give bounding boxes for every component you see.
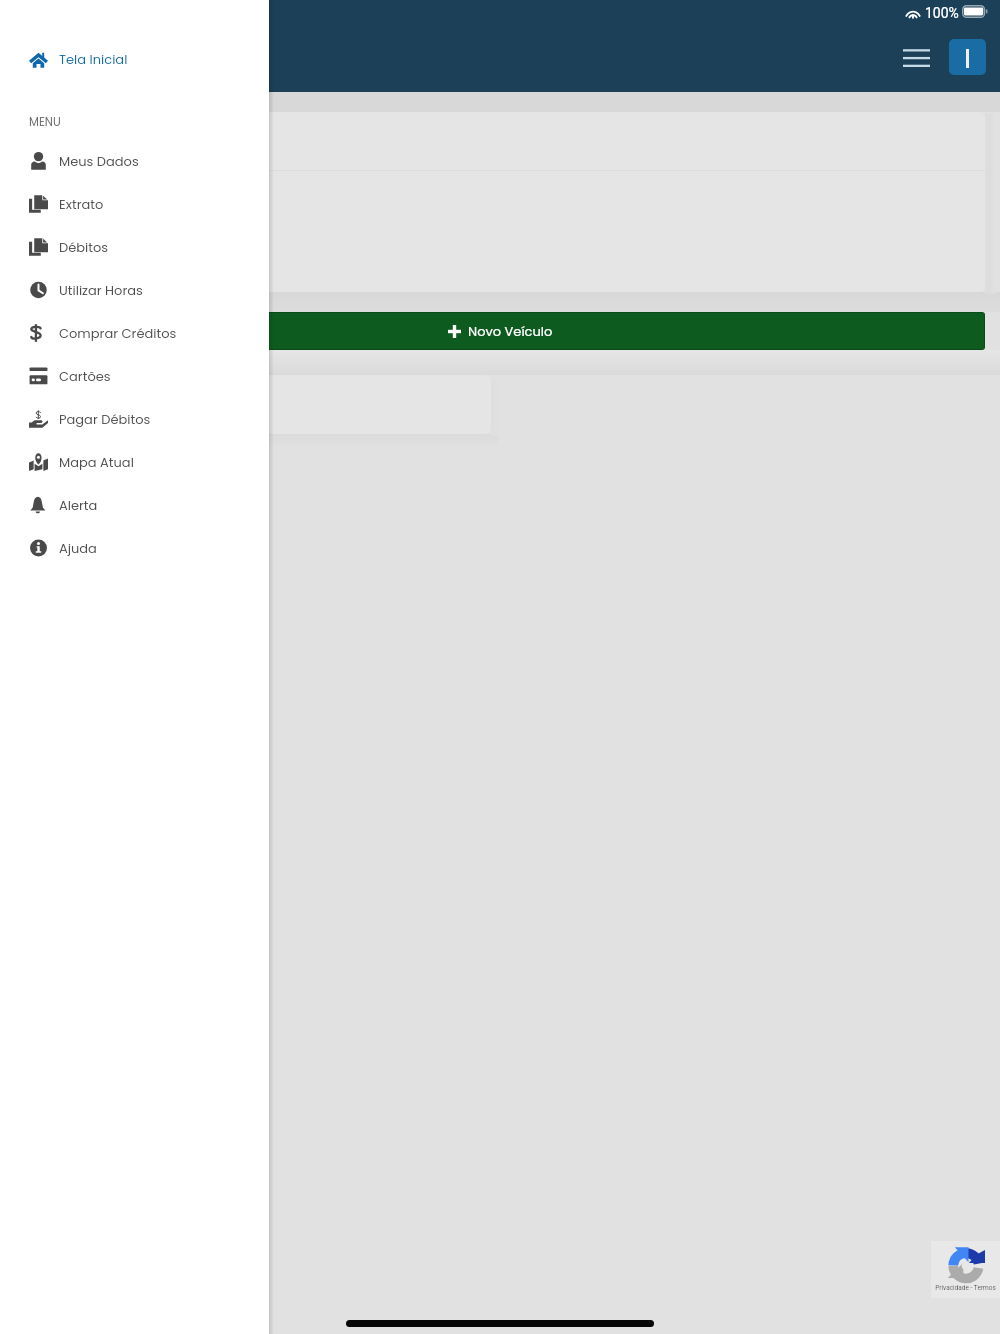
staticText: Comprar Créditos [59, 324, 177, 342]
button[interactable]: Comprar Créditos [0, 311, 269, 354]
staticText: Privacidade - Termos [935, 1284, 996, 1292]
staticText: Débitos [59, 238, 109, 256]
staticText: MENU [29, 114, 61, 130]
button[interactable]: reCAPTCHA privacy and terms [931, 1241, 1000, 1298]
staticText: Tela Inicial [59, 50, 128, 68]
staticText: Meus Dados [59, 152, 139, 170]
staticText: 100% [925, 5, 959, 18]
button[interactable]: Extrato [0, 182, 269, 225]
button[interactable]: Alerta [0, 483, 269, 526]
staticText: Novo Veículo [468, 322, 553, 340]
button[interactable]: Open navigation menu [898, 37, 944, 77]
staticText: Ajuda [59, 539, 97, 557]
button[interactable]: Pagar Débitos [0, 397, 269, 440]
button[interactable]: Utilizar Horas [0, 268, 269, 311]
staticText: Mapa Atual [59, 453, 134, 471]
button[interactable]: Mapa Atual [0, 440, 269, 483]
staticText: Alerta [59, 496, 98, 514]
staticText: Pagar Débitos [59, 410, 151, 428]
button[interactable]: Meus Dados [0, 139, 269, 182]
button[interactable]: Débitos [0, 225, 269, 268]
staticText: Extrato [59, 195, 104, 213]
button[interactable]: Account [949, 39, 986, 75]
staticText: Cartões [59, 367, 111, 385]
staticText: Utilizar Horas [59, 281, 143, 299]
button[interactable]: Ajuda [0, 526, 269, 569]
button[interactable]: Novo Veículo [15, 312, 985, 350]
button[interactable]: Tela Inicial [0, 37, 269, 80]
button[interactable]: Cartões [0, 354, 269, 397]
